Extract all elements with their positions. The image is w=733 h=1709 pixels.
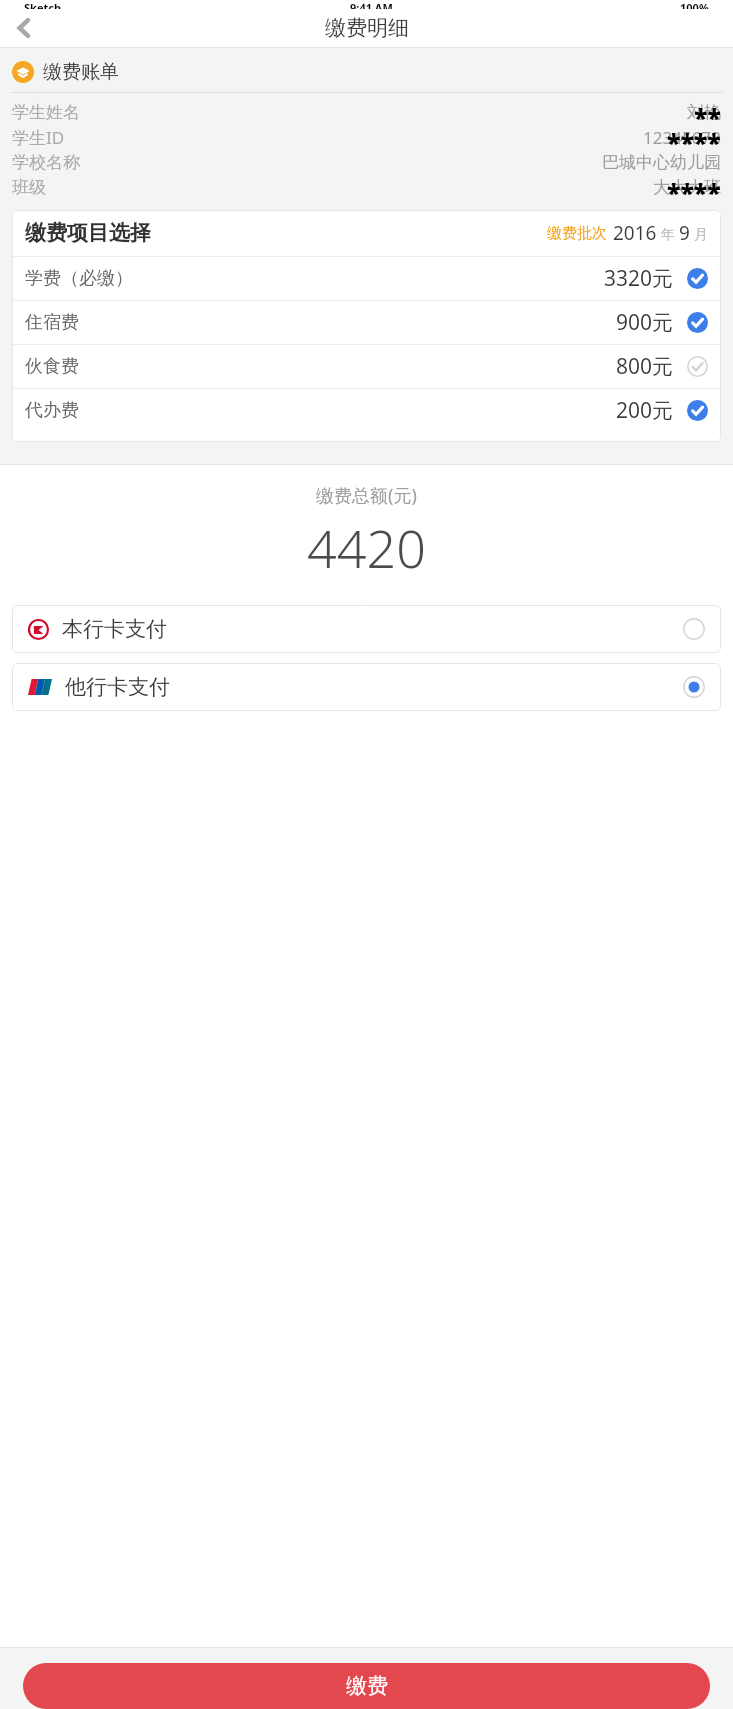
staticText: ** bbox=[694, 100, 721, 125]
staticText: 12345678 bbox=[643, 126, 721, 149]
button[interactable]: 学费（必缴） bbox=[12, 257, 721, 300]
staticText: 9 bbox=[679, 220, 690, 246]
staticText: 学校名称 bbox=[12, 152, 80, 173]
button[interactable]: 伙食费 bbox=[12, 345, 721, 388]
staticText: 他行卡支付 bbox=[65, 674, 170, 700]
button[interactable]: Back bbox=[6, 10, 42, 46]
staticText: 伙食费 bbox=[25, 355, 79, 378]
button[interactable]: 住宿费 bbox=[12, 301, 721, 344]
staticText: 刘艳 bbox=[687, 102, 721, 123]
staticText: 年 bbox=[657, 224, 679, 243]
staticText: 学生姓名 bbox=[12, 102, 80, 123]
staticText: 缴费明细 bbox=[325, 15, 409, 41]
staticText: 缴费账单 bbox=[43, 60, 119, 84]
staticText: 学费（必缴） bbox=[25, 267, 133, 290]
staticText: 9:41 AM bbox=[350, 0, 393, 9]
staticText: 800元 bbox=[616, 352, 674, 381]
button[interactable]: 缴费 bbox=[23, 1663, 710, 1709]
button[interactable]: 他行卡支付 bbox=[12, 663, 721, 711]
staticText: 班级 bbox=[12, 177, 46, 198]
staticText: 月 bbox=[690, 224, 708, 243]
staticText: 代办费 bbox=[25, 399, 79, 422]
button[interactable]: 本行卡支付 bbox=[12, 605, 721, 653]
staticText: 200元 bbox=[616, 396, 674, 425]
staticText: 100% bbox=[680, 0, 709, 9]
staticText: 4420 bbox=[0, 512, 733, 583]
staticText: 本行卡支付 bbox=[62, 616, 167, 642]
staticText: 缴费批次 bbox=[547, 224, 607, 243]
staticText: 缴费 bbox=[346, 1673, 388, 1699]
staticText: 2016 bbox=[613, 220, 657, 246]
staticText: 大大大班 bbox=[653, 177, 721, 198]
staticText: **** bbox=[667, 175, 721, 200]
staticText: 学生ID bbox=[12, 126, 65, 149]
staticText: **** bbox=[667, 125, 721, 150]
staticText: 缴费总额(元) bbox=[0, 483, 733, 508]
staticText: 3320元 bbox=[604, 264, 674, 293]
staticText: 住宿费 bbox=[25, 311, 79, 334]
staticText: 缴费项目选择 bbox=[25, 220, 151, 246]
button[interactable]: 代办费 bbox=[12, 389, 721, 432]
staticText: Sketch bbox=[24, 0, 62, 9]
staticText: 900元 bbox=[616, 308, 674, 337]
staticText: 巴城中心幼儿园 bbox=[602, 152, 721, 173]
